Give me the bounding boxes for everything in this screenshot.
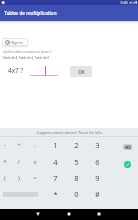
button[interactable]: = [27,170,42,186]
button[interactable]: ) [10,170,27,186]
button[interactable]: Sign in [2,38,28,46]
button[interactable]: Tables de multiplication [0,5,138,21]
staticText: = [33,174,37,182]
staticText: OK [78,69,85,75]
button[interactable]: Recents [92,209,106,220]
button[interactable]: 5 [66,154,87,170]
staticText: 5 [74,157,79,167]
button[interactable]: x [27,154,42,170]
staticText: x [33,158,37,166]
staticText: * [53,189,58,199]
button[interactable]: - [0,137,10,153]
button[interactable]: 7 [45,170,66,186]
button[interactable]: # [87,186,108,202]
button[interactable]: 9 [87,170,108,186]
staticText: Table de 4, Table de 6, Table de 8 [3,56,49,60]
staticText: Suggest contact names? Touch for info. [36,130,103,135]
staticText: Quelles tables souhaites-tu reviser ? [3,50,52,54]
button[interactable]: + [10,137,27,153]
staticText: 6 [95,157,100,167]
staticText: 2 [74,140,79,150]
staticText: 8 [74,173,79,183]
staticText: , [34,141,36,149]
button[interactable]: 4 [45,154,66,170]
staticText: 5:48 [120,0,128,5]
button[interactable]: ( [0,170,10,186]
button[interactable]: , [27,137,42,153]
button[interactable]: Hide keyboard [31,209,45,220]
staticText: + [17,141,21,149]
staticText: ( [4,174,6,182]
button[interactable]: Suggest contact names? Touch for info. [0,128,138,137]
button[interactable]: 2 [66,137,87,153]
staticText: - [4,141,6,149]
staticText: 0 [74,189,79,199]
staticText: Tables de multiplication [4,10,57,16]
staticText: # [95,189,100,199]
staticText: * [3,158,7,166]
button[interactable]: 3 [87,137,108,153]
staticText: ) [18,174,20,182]
button[interactable]: 6 [87,154,108,170]
staticText: / [17,158,20,166]
button[interactable]: Backspace [123,144,132,150]
button[interactable]: Home [62,209,76,220]
button[interactable]: 0 [66,186,87,202]
button[interactable]: OK [70,66,92,77]
staticText: 7 [53,173,58,183]
button[interactable]: Enter [124,161,131,168]
staticText: 4 [53,157,58,167]
staticText: 1 [53,140,58,150]
staticText: 4x7 ? [8,66,23,75]
button[interactable]: * [0,154,10,170]
staticText: 3 [95,140,100,150]
button[interactable]: 1 [45,137,66,153]
staticText: Sign in [11,40,23,45]
staticText: 9 [95,173,100,183]
button[interactable]: 8 [66,170,87,186]
button[interactable]: / [10,154,27,170]
button[interactable]: * [45,186,66,202]
